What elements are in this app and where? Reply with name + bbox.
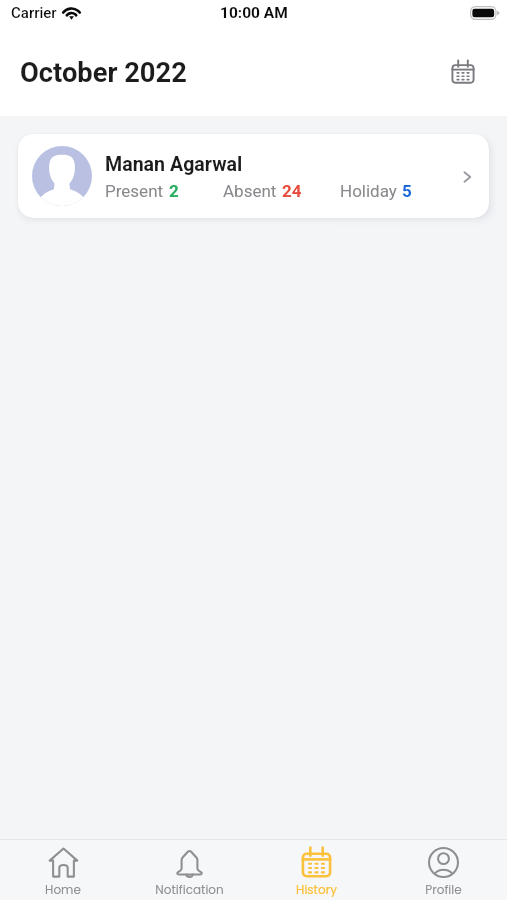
staticText: Notification: [155, 881, 224, 898]
staticText: 2: [169, 181, 179, 201]
button[interactable]: Notification: [126, 840, 253, 900]
button[interactable]: Home: [0, 840, 126, 900]
staticText: 5: [402, 181, 412, 201]
staticText: 24: [282, 181, 302, 201]
staticText: Manan Agarwal: [105, 153, 243, 176]
staticText: Profile: [425, 881, 462, 898]
staticText: History: [296, 881, 337, 898]
staticText: October 2022: [20, 57, 187, 89]
staticText: Holiday: [340, 181, 397, 201]
staticText: Carrier: [11, 4, 57, 22]
staticText: 10:00 AM: [220, 4, 288, 22]
staticText: Present: [105, 181, 164, 201]
staticText: Absent: [223, 181, 277, 201]
button[interactable]: History: [253, 840, 380, 900]
button[interactable]: Profile: [380, 840, 507, 900]
button[interactable]: Calendar: [446, 55, 480, 89]
staticText: Home: [45, 881, 81, 898]
button[interactable]: Manan Agarwal: [18, 134, 489, 218]
